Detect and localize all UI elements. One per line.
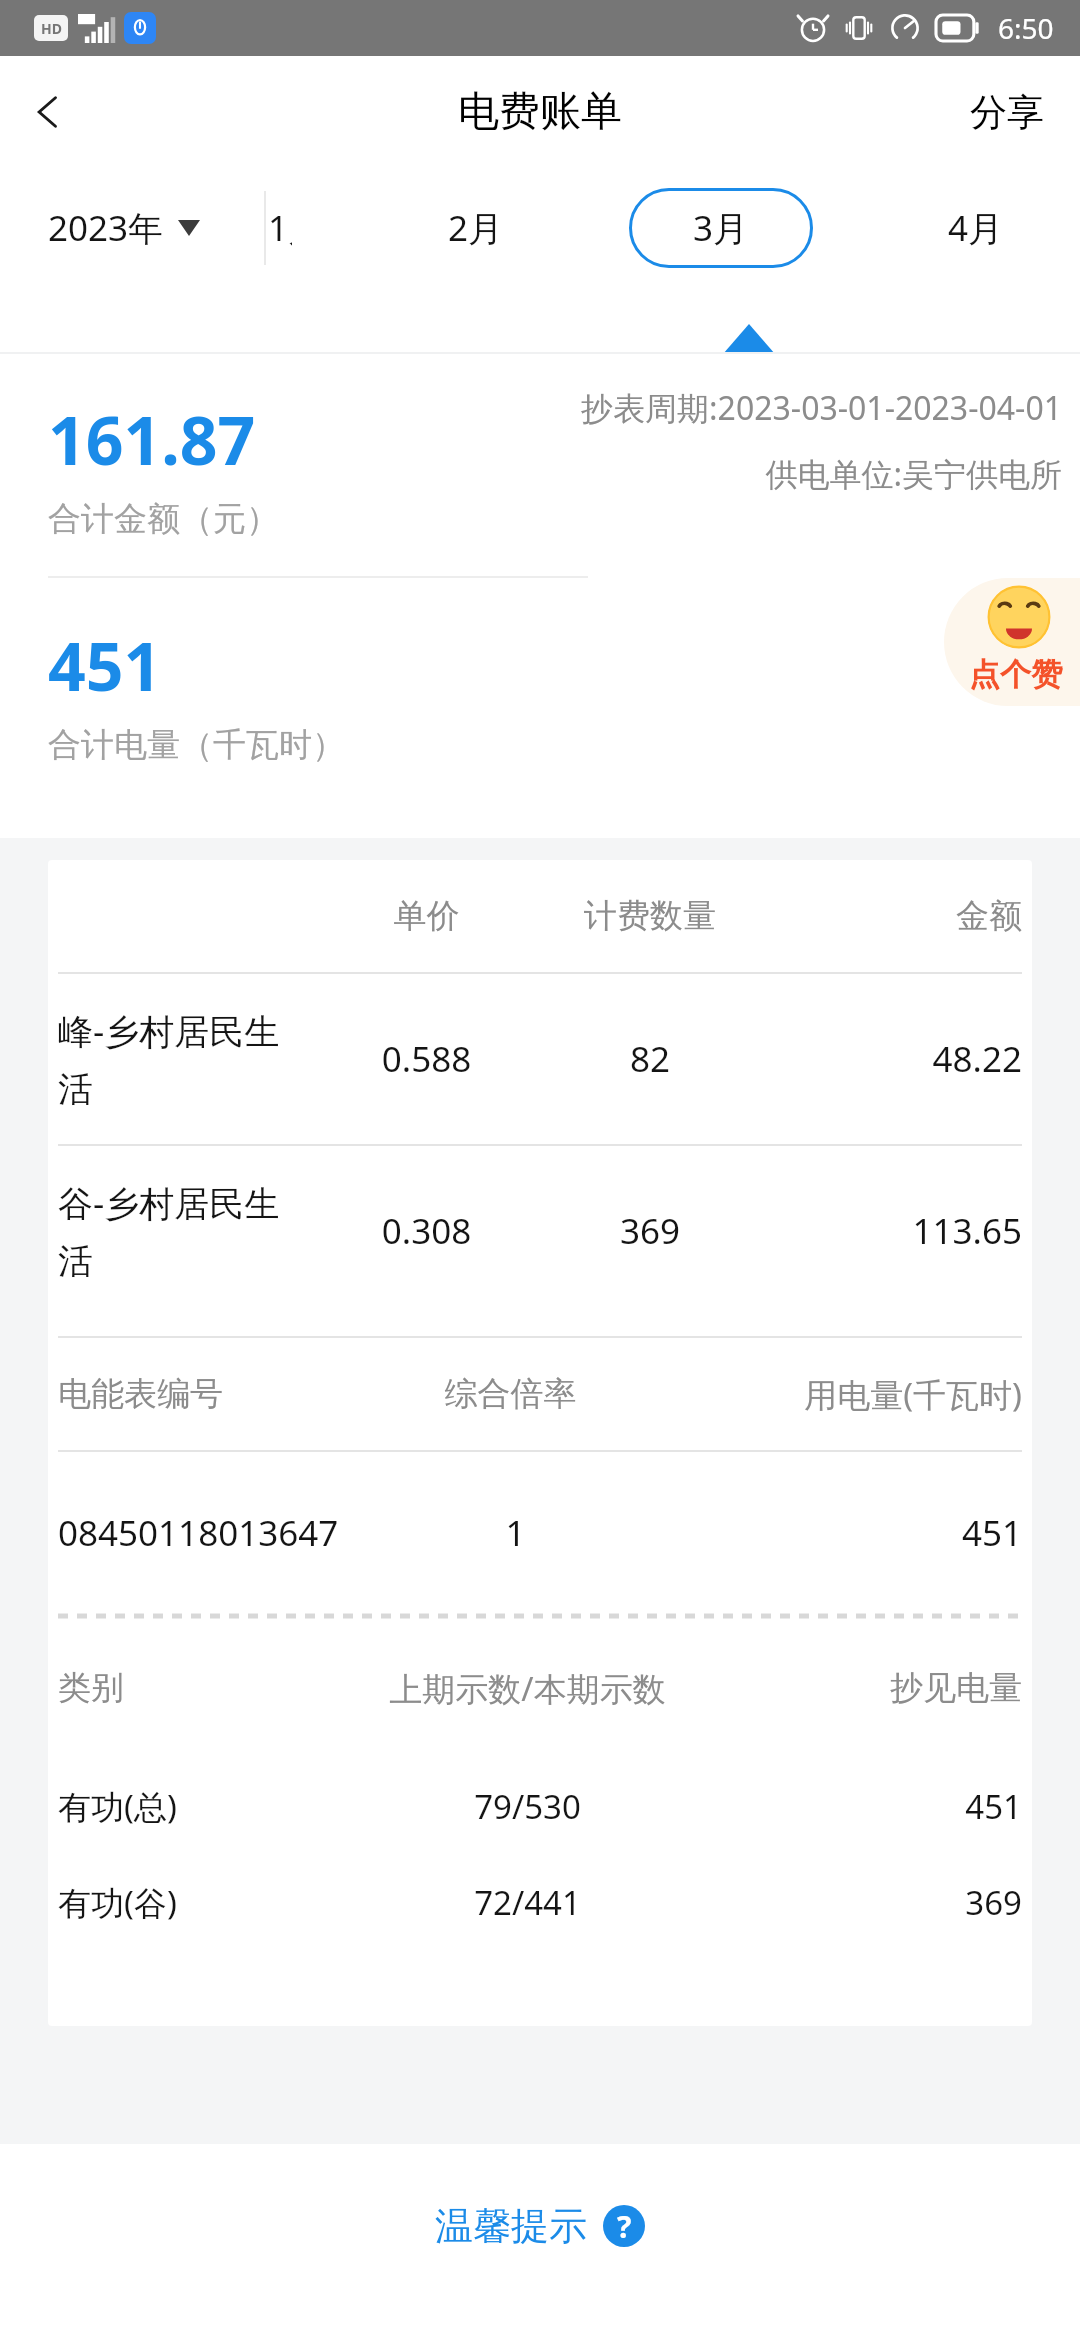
staticText: 82 bbox=[526, 1035, 774, 1083]
button[interactable]: 点个赞 bbox=[944, 578, 1080, 706]
staticText: 451 bbox=[718, 1784, 1022, 1829]
staticText: 类别 bbox=[58, 1667, 337, 1709]
staticText: 161.87 bbox=[48, 394, 256, 484]
staticText: 电费账单 bbox=[458, 86, 622, 138]
staticText: 1月 bbox=[268, 204, 324, 252]
staticText: 有功(总) bbox=[58, 1784, 337, 1829]
staticText: 3月 bbox=[693, 204, 749, 252]
button[interactable]: 4月 bbox=[930, 192, 1022, 264]
staticText: 113.65 bbox=[774, 1207, 1022, 1255]
staticText: 451 bbox=[48, 620, 162, 710]
staticText: ? bbox=[617, 2206, 632, 2247]
staticText: 6:50 bbox=[998, 9, 1054, 47]
button[interactable]: 分享 bbox=[956, 79, 1058, 146]
staticText: 电能表编号 bbox=[58, 1373, 371, 1415]
staticText: 合计电量（千瓦时） bbox=[48, 724, 345, 766]
staticText: 综合倍率 bbox=[371, 1373, 650, 1415]
staticText: 峰-乡村居民生活 bbox=[58, 1007, 309, 1111]
staticText: 单价 bbox=[327, 895, 526, 937]
staticText: HD bbox=[41, 19, 62, 38]
staticText: 48.22 bbox=[774, 1035, 1022, 1083]
staticText: 72/441 bbox=[337, 1880, 718, 1925]
staticText: 上期示数/本期示数 bbox=[337, 1666, 718, 1711]
staticText: 供电单位:吴宁供电所 bbox=[765, 452, 1062, 496]
staticText: 抄表周期:2023-03-01-2023-04-01 bbox=[581, 386, 1062, 430]
staticText: 合计金额（元） bbox=[48, 498, 279, 540]
staticText: 1 bbox=[371, 1509, 660, 1557]
staticText: 谷-乡村居民生活 bbox=[58, 1179, 309, 1283]
staticText: 2023年 bbox=[48, 204, 164, 252]
button[interactable]: 返回 bbox=[0, 64, 96, 160]
staticText: 用电量(千瓦时) bbox=[650, 1372, 1022, 1417]
staticText: 计费数量 bbox=[526, 895, 774, 937]
staticText: 0.588 bbox=[327, 1035, 526, 1083]
staticText: 2月 bbox=[448, 204, 504, 252]
button[interactable]: 2023年 bbox=[44, 196, 204, 260]
staticText: 抄见电量 bbox=[718, 1667, 1022, 1709]
button[interactable]: 温馨提示 bbox=[417, 2192, 663, 2260]
button[interactable]: 3月 bbox=[629, 188, 813, 268]
staticText: 369 bbox=[718, 1880, 1022, 1925]
staticText: 金额 bbox=[774, 895, 1022, 937]
button[interactable]: 谷-乡村居民生活 bbox=[58, 1146, 1022, 1316]
staticText: 有功(谷) bbox=[58, 1880, 337, 1925]
staticText: 0.308 bbox=[327, 1207, 526, 1255]
staticText: 369 bbox=[526, 1207, 774, 1255]
staticText: 点个赞 bbox=[969, 655, 1062, 694]
button[interactable]: 峰-乡村居民生活 bbox=[58, 974, 1022, 1144]
button[interactable]: 2月 bbox=[430, 192, 522, 264]
staticText: 分享 bbox=[970, 89, 1044, 136]
staticText: 08450118013647 bbox=[58, 1509, 371, 1557]
staticText: 4月 bbox=[948, 204, 1004, 252]
staticText: 温馨提示 bbox=[435, 2202, 587, 2250]
staticText: 79/530 bbox=[337, 1784, 718, 1829]
staticText: 451 bbox=[660, 1509, 1022, 1557]
